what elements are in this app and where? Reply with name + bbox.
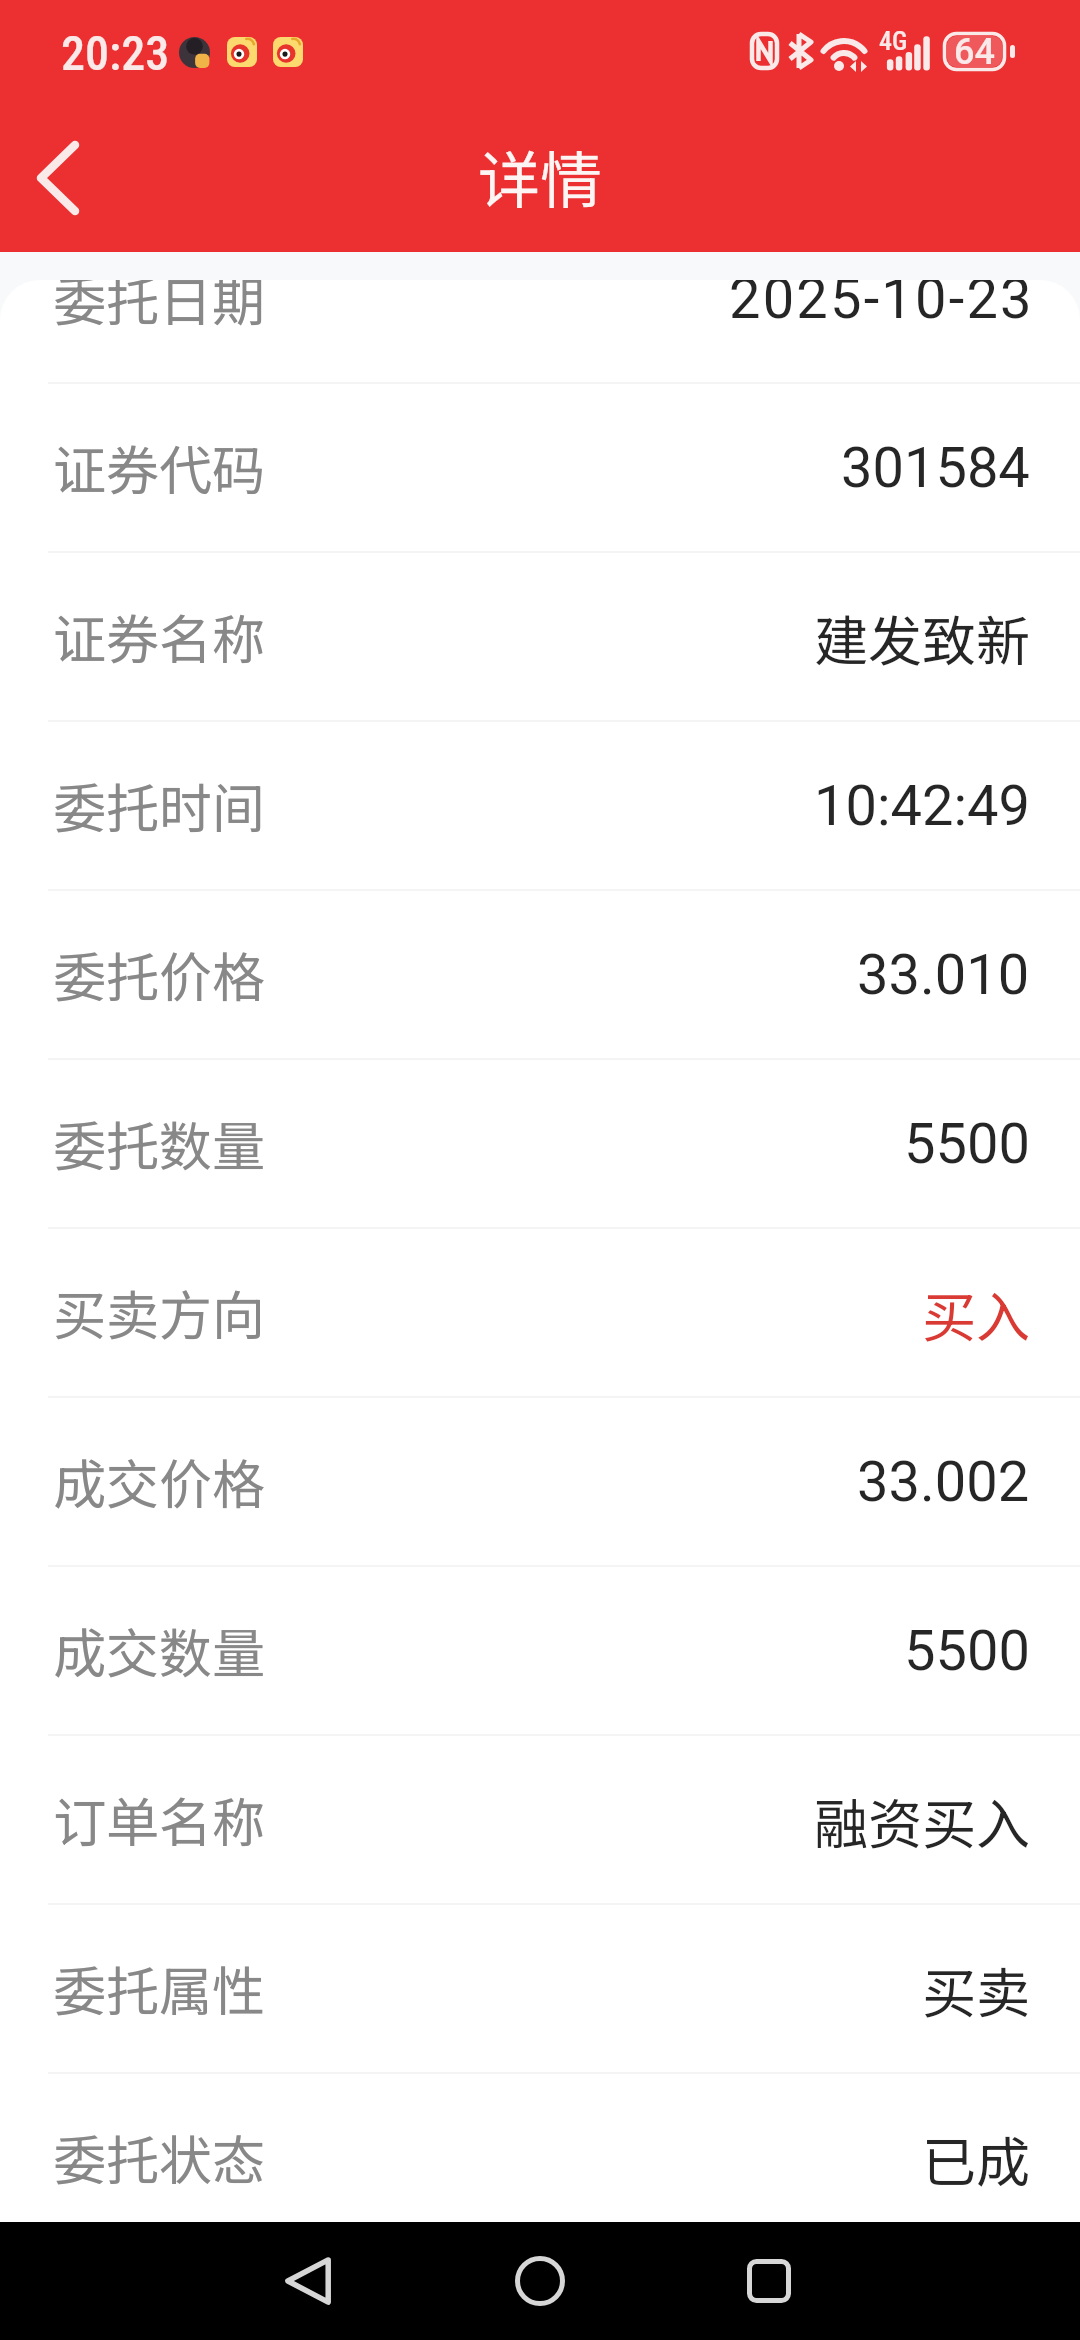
staticText: 成交价格 — [53, 1443, 265, 1520]
staticText: 成交数量 — [53, 1612, 265, 1689]
staticText: 详情 — [478, 131, 603, 221]
button[interactable]: 证券名称 — [0, 553, 1080, 720]
staticText: 301584 — [841, 435, 1030, 501]
button[interactable]: 委托价格 — [0, 891, 1080, 1058]
staticText: 33.002 — [857, 1449, 1030, 1515]
staticText: 融资买入 — [814, 1781, 1030, 1859]
button[interactable]: 委托数量 — [0, 1060, 1080, 1227]
button[interactable]: Back — [0, 118, 120, 238]
button[interactable]: 买卖方向 — [0, 1229, 1080, 1396]
staticText: 委托日期 — [53, 280, 265, 337]
button[interactable]: 订单名称 — [0, 1736, 1080, 1903]
staticText: 10:42:49 — [814, 773, 1030, 839]
staticText: 买卖 — [922, 1950, 1030, 2028]
staticText: 证券代码 — [53, 429, 265, 506]
staticText: 64 — [954, 31, 995, 73]
staticText: 委托属性 — [53, 1950, 265, 2027]
button[interactable]: Home — [480, 2222, 600, 2340]
staticText: 买入 — [922, 1274, 1030, 1352]
staticText: 委托价格 — [53, 936, 265, 1013]
button[interactable]: 委托时间 — [0, 722, 1080, 889]
button[interactable]: 委托属性 — [0, 1905, 1080, 2072]
staticText: 委托状态 — [53, 2119, 265, 2196]
staticText: 委托时间 — [53, 767, 265, 844]
staticText: 建发致新 — [814, 598, 1030, 676]
button[interactable]: 委托状态 — [0, 2074, 1080, 2241]
staticText: 证券名称 — [53, 598, 265, 675]
staticText: 20:23 — [61, 25, 170, 81]
button[interactable]: Recent apps — [709, 2222, 829, 2340]
staticText: 4G — [879, 26, 908, 56]
button[interactable]: 证券代码 — [0, 384, 1080, 551]
button[interactable]: 成交数量 — [0, 1567, 1080, 1734]
staticText: 订单名称 — [53, 1781, 265, 1858]
staticText: 委托数量 — [53, 1105, 265, 1182]
staticText: 已成 — [922, 2119, 1030, 2197]
staticText: 5500 — [904, 1618, 1030, 1684]
staticText: 33.010 — [857, 942, 1030, 1008]
button[interactable]: 委托日期 — [0, 280, 1080, 382]
button[interactable]: Back — [249, 2222, 369, 2340]
button[interactable]: 成交价格 — [0, 1398, 1080, 1565]
staticText: 买卖方向 — [53, 1274, 265, 1351]
staticText: 5500 — [904, 1111, 1030, 1177]
staticText: 2025-10-23 — [729, 280, 1034, 332]
